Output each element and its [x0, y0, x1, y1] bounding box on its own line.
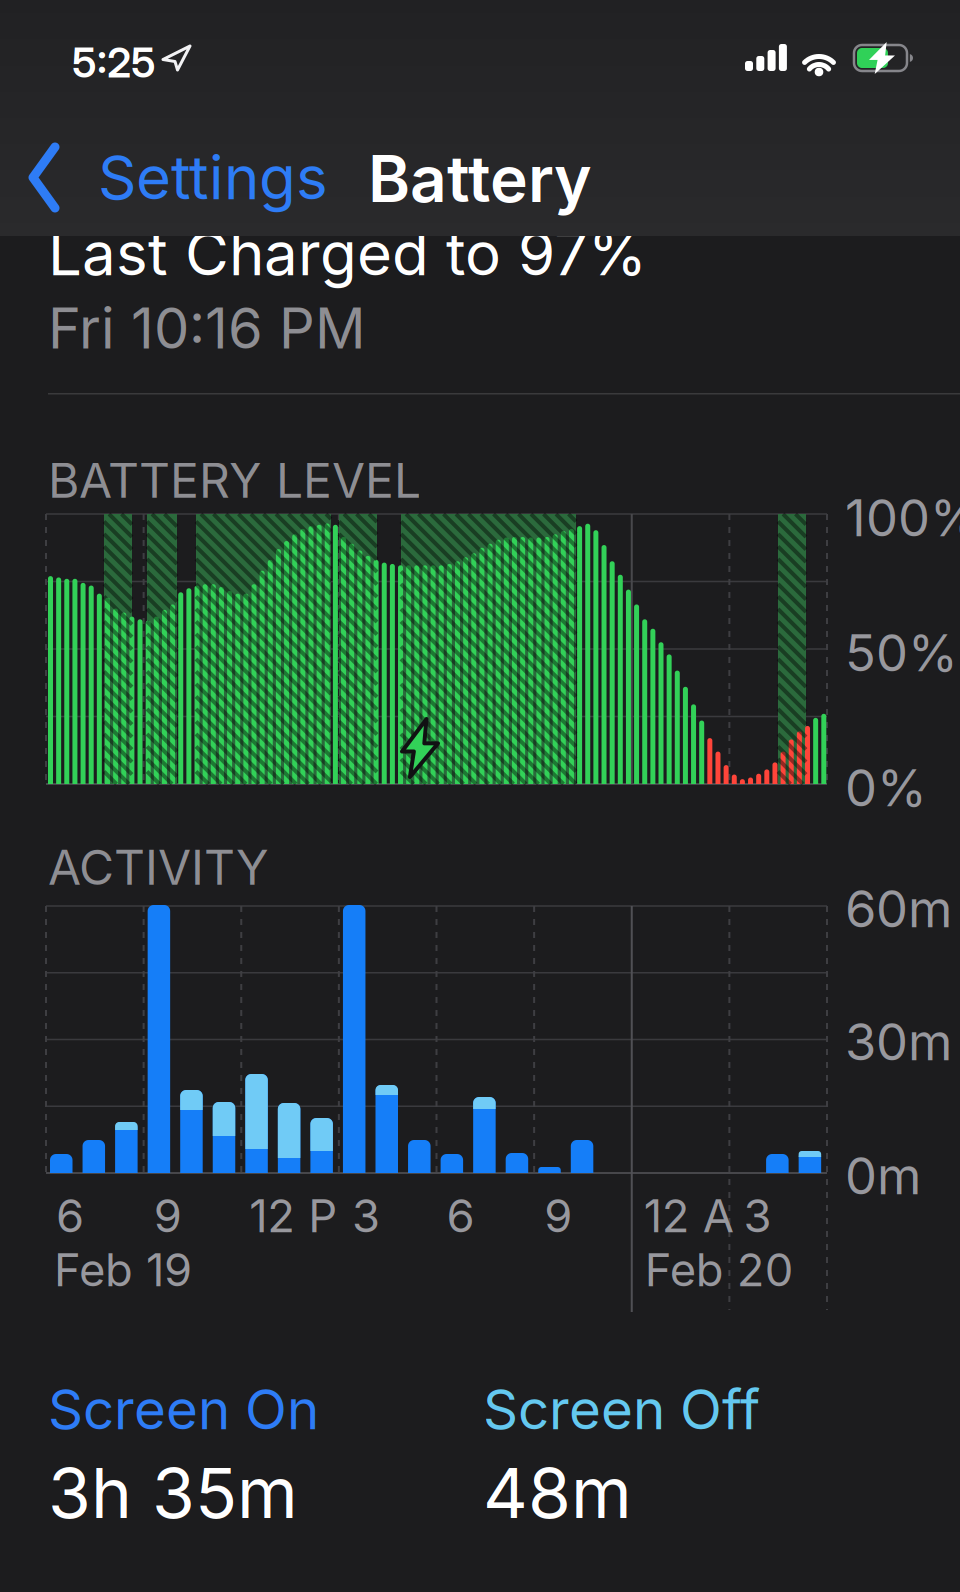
staticText: 3: [743, 1189, 771, 1242]
staticText: Screen On: [48, 1377, 319, 1441]
staticText: 0m: [845, 1146, 921, 1206]
staticText: Settings: [98, 142, 328, 213]
staticText: Fri 10:16 PM: [48, 295, 366, 361]
staticText: Feb 20: [645, 1243, 794, 1296]
staticText: 30m: [845, 1012, 952, 1072]
staticText: Feb 19: [54, 1243, 192, 1296]
staticText: 6: [56, 1189, 84, 1242]
staticText: 3: [352, 1189, 380, 1242]
staticText: BATTERY LEVEL: [48, 452, 421, 509]
staticText: 50%: [845, 623, 958, 683]
staticText: 9: [154, 1189, 182, 1242]
staticText: 48m: [483, 1452, 632, 1534]
staticText: 9: [544, 1189, 572, 1242]
staticText: 60m: [845, 879, 952, 939]
staticText: ACTIVITY: [48, 839, 269, 896]
staticText: 5:25: [72, 38, 156, 87]
staticText: 12 P: [249, 1189, 337, 1242]
staticText: 100%: [845, 488, 960, 548]
button[interactable]: Back: [24, 142, 316, 218]
staticText: 0%: [845, 758, 927, 818]
staticText: 12 A: [644, 1189, 734, 1242]
staticText: Last Charged to 97%: [48, 218, 647, 289]
staticText: 3h 35m: [48, 1452, 298, 1534]
staticText: Screen Off: [483, 1377, 760, 1441]
staticText: Battery: [368, 141, 592, 216]
staticText: 6: [446, 1189, 474, 1242]
